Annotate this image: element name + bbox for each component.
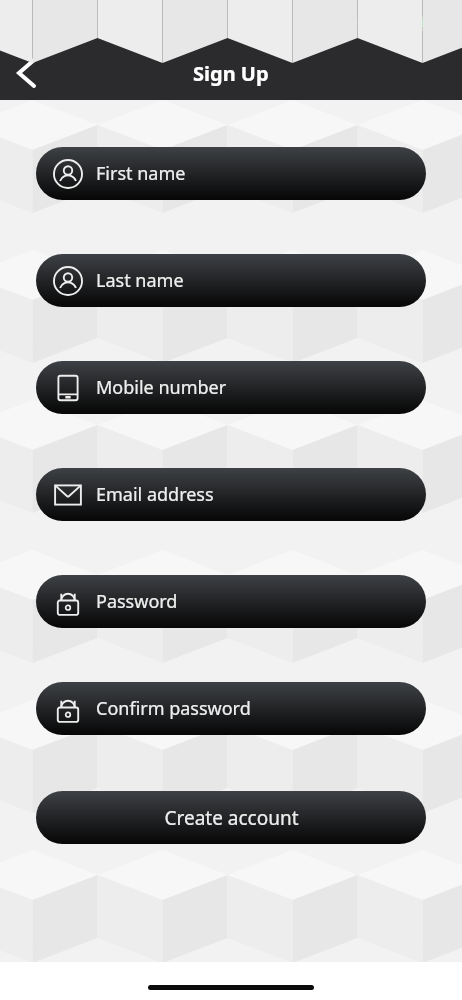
staticText: Mobile number [96,375,227,400]
staticText: Last name [96,268,184,293]
button[interactable]: Mobile number [36,361,426,414]
button[interactable]: First name [36,147,426,200]
button[interactable]: Create account [36,791,426,844]
staticText: Email address [96,482,214,507]
staticText: Password [96,589,178,614]
staticText: Sign Up [193,60,269,87]
button[interactable]: Password [36,575,426,628]
button[interactable]: Confirm password [36,682,426,735]
staticText: Create account [164,805,299,831]
button[interactable]: Back [0,47,52,99]
button[interactable]: Last name [36,254,426,307]
button[interactable]: Email address [36,468,426,521]
staticText: Confirm password [96,696,251,721]
staticText: First name [96,161,186,186]
